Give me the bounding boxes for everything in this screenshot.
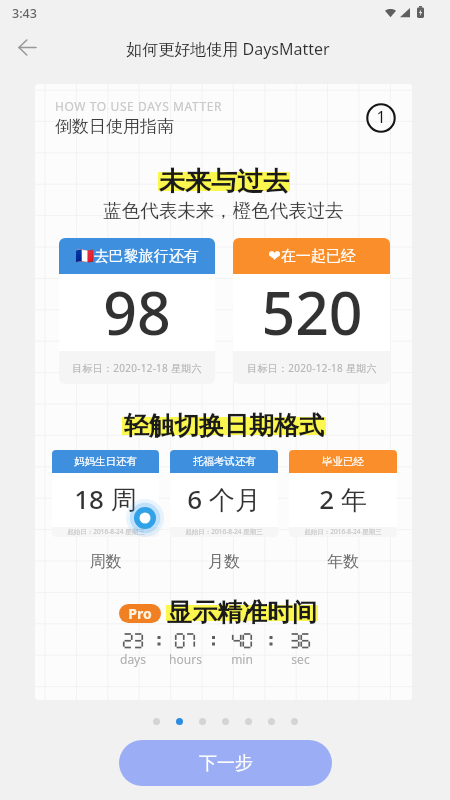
- staticText: 毕业已经: [322, 455, 364, 468]
- staticText: 6 个月: [187, 481, 261, 517]
- staticText: 妈妈生日还有: [74, 455, 137, 468]
- staticText: 18 周: [74, 481, 137, 517]
- staticText: 蓝色代表未来，橙色代表过去: [35, 199, 412, 222]
- staticText: 目标日：2020-12-18 星期六: [72, 361, 202, 375]
- staticText: 周数: [52, 552, 159, 572]
- staticText: 2 年: [319, 481, 367, 517]
- staticText: days: [120, 651, 146, 667]
- staticText: min: [231, 651, 253, 667]
- staticText: 显示精准时间: [167, 597, 317, 628]
- button[interactable]: 下一步: [119, 740, 332, 786]
- staticText: 目标日：2020-12-18 星期六: [247, 361, 377, 375]
- button[interactable]: ❤️在一起已经: [233, 238, 390, 384]
- button[interactable]: 妈妈生日还有: [52, 450, 159, 537]
- staticText: 未来与过去: [159, 165, 289, 198]
- staticText: 3:43: [12, 5, 37, 22]
- staticText: sec: [291, 651, 310, 667]
- staticText: ❤️在一起已经: [268, 247, 356, 266]
- staticText: 🇫🇷去巴黎旅行还有: [75, 247, 199, 266]
- staticText: 起始日：2016-8-24 星期三: [67, 527, 145, 536]
- staticText: 月数: [170, 552, 278, 572]
- staticText: 托福考试还有: [193, 455, 256, 468]
- button[interactable]: 托福考试还有: [170, 450, 278, 537]
- staticText: hours: [169, 651, 202, 667]
- staticText: 520: [261, 272, 363, 349]
- button[interactable]: Back: [8, 28, 46, 66]
- button[interactable]: 🇫🇷去巴黎旅行还有: [59, 238, 215, 384]
- staticText: 轻触切换日期格式: [124, 410, 324, 441]
- staticText: Pro: [128, 604, 152, 623]
- button[interactable]: 毕业已经: [289, 450, 397, 537]
- staticText: 倒数日使用指南: [55, 116, 174, 137]
- staticText: 年数: [289, 552, 397, 572]
- staticText: HOW TO USE DAYS MATTER: [55, 98, 223, 114]
- staticText: 1: [376, 106, 386, 128]
- staticText: 如何更好地使用 DaysMatter: [126, 38, 330, 60]
- staticText: 98: [103, 272, 171, 349]
- staticText: 起始日：2016-8-24 星期三: [304, 527, 382, 536]
- staticText: 下一步: [199, 752, 253, 775]
- staticText: 起始日：2016-8-24 星期三: [185, 527, 263, 536]
